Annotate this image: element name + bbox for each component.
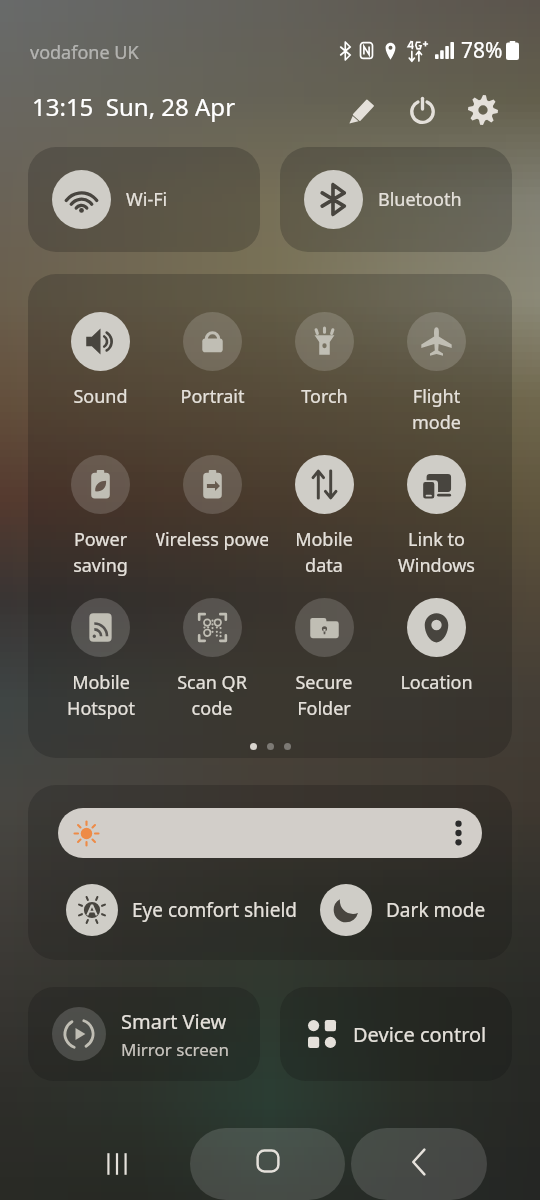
button[interactable]: Home: [190, 1128, 345, 1200]
button[interactable]: Wi-Fi: [28, 147, 260, 252]
staticText: Eye comfort shield: [132, 897, 298, 923]
staticText: Bluetooth: [378, 187, 462, 212]
button[interactable]: Edit quick settings: [336, 85, 386, 135]
staticText: Torch: [301, 384, 348, 409]
staticText: Location: [400, 670, 473, 695]
button[interactable]: Smart View: [28, 987, 260, 1081]
button[interactable]: Settings: [458, 85, 508, 135]
staticText: 13:15 Sun, 28 Apr: [32, 90, 236, 123]
staticText: Power saving: [73, 527, 128, 577]
staticText: Mobile Hotspot: [67, 670, 135, 720]
staticText: Secure Folder: [295, 670, 353, 720]
staticText: Scan QR code: [177, 670, 247, 720]
staticText: Link to Windows: [398, 527, 475, 577]
button[interactable]: Mobile data: [268, 455, 380, 598]
staticText: Sound: [73, 384, 128, 409]
staticText: vodafone UK: [30, 40, 139, 65]
button[interactable]: Sound: [45, 312, 156, 455]
staticText: Wireless power: [156, 527, 268, 552]
staticText: Mirror screen: [121, 1038, 229, 1061]
button[interactable]: Torch: [268, 312, 380, 455]
button[interactable]: [58, 808, 482, 858]
button[interactable]: Device control: [280, 987, 512, 1081]
button[interactable]: Mobile Hotspot: [45, 598, 156, 741]
button[interactable]: Dark mode: [320, 884, 512, 936]
button[interactable]: Wireless power: [156, 455, 268, 598]
button[interactable]: Recent apps: [86, 1128, 148, 1200]
staticText: Device control: [353, 1021, 487, 1048]
staticText: Flight mode: [412, 384, 461, 434]
staticText: 78%: [461, 36, 503, 65]
button[interactable]: Flight mode: [380, 312, 492, 455]
button[interactable]: Portrait: [156, 312, 268, 455]
button[interactable]: Bluetooth: [280, 147, 512, 252]
staticText: Mobile data: [295, 527, 353, 577]
staticText: Dark mode: [386, 897, 486, 923]
staticText: Wi-Fi: [126, 187, 168, 212]
button[interactable]: Power off: [397, 85, 447, 135]
button[interactable]: Back: [351, 1128, 487, 1200]
button[interactable]: Power saving: [45, 455, 156, 598]
staticText: Smart View: [121, 1008, 227, 1035]
button[interactable]: Location: [380, 598, 492, 741]
staticText: Portrait: [180, 384, 245, 409]
button[interactable]: Eye comfort shield: [28, 884, 320, 936]
button[interactable]: Secure Folder: [268, 598, 380, 741]
button[interactable]: Link to Windows: [380, 455, 492, 598]
button[interactable]: Scan QR code: [156, 598, 268, 741]
